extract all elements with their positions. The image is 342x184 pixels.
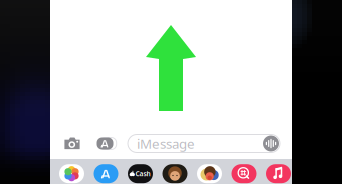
button[interactable]: Memoji stickers: [192, 159, 227, 184]
staticText: Cash: [135, 169, 150, 178]
button[interactable]: Camera: [59, 130, 85, 156]
button[interactable]: Apple Cash: [123, 159, 158, 184]
button[interactable]: Images: [227, 159, 261, 184]
staticText: iMessage: [137, 135, 195, 152]
button[interactable]: App Store: [89, 159, 123, 184]
button[interactable]: Memoji: [158, 159, 192, 184]
button[interactable]: Music: [261, 159, 296, 184]
button[interactable]: Message field: [128, 134, 280, 152]
button[interactable]: Photos: [54, 159, 89, 184]
button[interactable]: Apps: [92, 130, 118, 156]
